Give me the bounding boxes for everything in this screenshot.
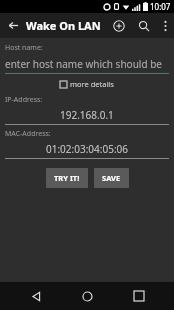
staticText: enter host name which should be displaye… bbox=[5, 57, 169, 71]
button[interactable]: Recents bbox=[123, 282, 155, 310]
button[interactable]: More options bbox=[156, 13, 174, 38]
button[interactable]: IP-Address: bbox=[5, 95, 169, 125]
button[interactable]: enter host name which should be displaye… bbox=[5, 57, 169, 74]
button[interactable]: Back bbox=[0, 13, 26, 38]
button[interactable]: Search bbox=[132, 13, 156, 38]
staticText: Host name: bbox=[5, 43, 43, 53]
staticText: TRY IT! bbox=[54, 173, 80, 183]
button[interactable]: TRY IT! bbox=[46, 168, 88, 188]
staticText: IP-Address: bbox=[5, 95, 43, 105]
staticText: SAVE bbox=[102, 173, 121, 183]
button[interactable]: SAVE bbox=[94, 168, 129, 188]
button[interactable]: Home bbox=[71, 282, 103, 310]
staticText: MAC-Address: bbox=[5, 129, 51, 139]
button[interactable]: more details bbox=[58, 78, 116, 90]
button[interactable]: MAC-Address: bbox=[5, 129, 169, 159]
staticText: more details bbox=[70, 79, 114, 89]
staticText: 10:07 bbox=[150, 1, 171, 12]
staticText: Wake On LAN bbox=[26, 18, 101, 33]
staticText: 01:02:03:04:05:06 bbox=[46, 142, 129, 156]
button[interactable]: Back bbox=[20, 282, 52, 310]
button[interactable]: Add bbox=[106, 13, 132, 38]
staticText: 192.168.0.1 bbox=[60, 108, 114, 122]
